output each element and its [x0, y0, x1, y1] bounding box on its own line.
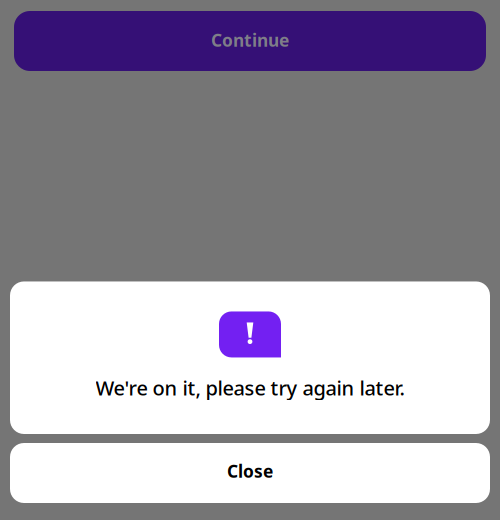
- button[interactable]: Continue: [14, 11, 486, 71]
- staticText: We're on it, please try again later.: [95, 374, 404, 401]
- button[interactable]: Close: [10, 443, 490, 503]
- staticText: Close: [227, 459, 273, 482]
- staticText: Continue: [211, 28, 289, 51]
